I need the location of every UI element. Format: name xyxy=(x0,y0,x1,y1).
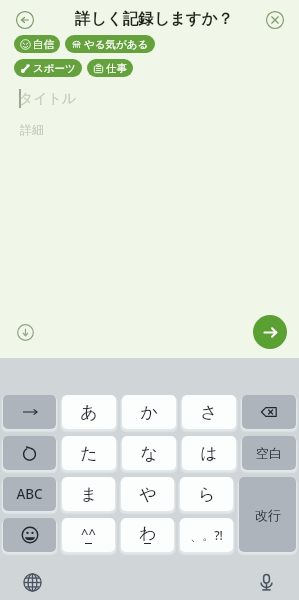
button[interactable]: か xyxy=(122,395,176,429)
button[interactable]: ま xyxy=(62,477,115,511)
staticText: ABC xyxy=(16,485,43,503)
staticText: わ xyxy=(139,523,157,544)
staticText: ま xyxy=(80,484,98,505)
staticText: 空白 xyxy=(256,445,282,461)
button[interactable]: な xyxy=(122,436,176,470)
staticText: やる気がある xyxy=(84,38,149,51)
button[interactable]: ^^ xyxy=(62,518,115,552)
button[interactable] xyxy=(242,395,296,429)
staticText: さ xyxy=(200,402,218,423)
button[interactable]: Change language xyxy=(20,570,44,594)
staticText: 改行 xyxy=(255,507,281,523)
staticText: 自信 xyxy=(33,38,54,51)
button[interactable] xyxy=(3,395,56,429)
button[interactable] xyxy=(3,518,56,552)
staticText: 仕事 xyxy=(106,62,127,75)
staticText: 詳細 xyxy=(20,122,44,137)
staticText: あ xyxy=(80,402,98,423)
button[interactable]: 仕事 xyxy=(87,59,133,77)
button[interactable]: Download xyxy=(12,319,38,345)
button[interactable]: スポーツ xyxy=(14,59,82,77)
button[interactable]: わ xyxy=(121,518,174,552)
button[interactable]: やる気がある xyxy=(65,35,155,53)
button[interactable]: あ xyxy=(62,395,116,429)
staticText: は xyxy=(200,443,218,464)
button[interactable]: 、。?! xyxy=(180,518,233,552)
staticText: や xyxy=(139,484,157,505)
button[interactable]: や xyxy=(121,477,174,511)
button[interactable]: さ xyxy=(182,395,236,429)
staticText: ら xyxy=(198,484,216,505)
button[interactable]: Back xyxy=(11,6,38,33)
staticText: た xyxy=(80,443,98,464)
staticText: な xyxy=(140,443,158,464)
button[interactable]: 自信 xyxy=(14,35,60,53)
button[interactable]: Next xyxy=(253,315,287,349)
staticText: か xyxy=(140,402,158,423)
staticText: スポーツ xyxy=(33,62,76,75)
button[interactable]: ABC xyxy=(3,477,56,511)
button[interactable]: た xyxy=(62,436,116,470)
button[interactable]: 改行 xyxy=(239,477,296,552)
button[interactable]: ら xyxy=(180,477,233,511)
button[interactable]: は xyxy=(182,436,236,470)
button[interactable]: Voice input xyxy=(254,570,278,594)
staticText: タイトル xyxy=(19,90,77,108)
button[interactable]: 空白 xyxy=(242,436,296,470)
staticText: 、。?! xyxy=(190,527,223,543)
button[interactable] xyxy=(3,436,56,470)
staticText: ^^ xyxy=(81,524,96,542)
button[interactable]: Close xyxy=(261,6,288,33)
staticText: 詳しく記録しますか？ xyxy=(75,9,234,29)
